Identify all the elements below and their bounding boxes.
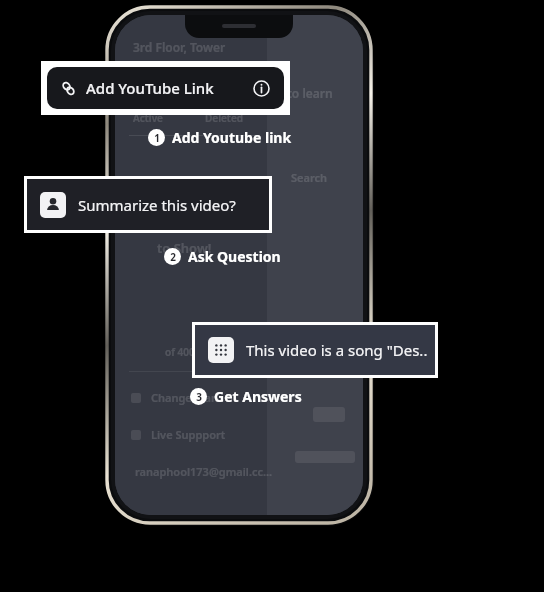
other: Apps [214, 343, 228, 357]
button[interactable]: Account [27, 179, 269, 230]
staticText: of 4000 [165, 345, 201, 359]
button[interactable]: 1 [148, 128, 292, 147]
staticText: 3rd Floor, Tower [133, 39, 226, 55]
staticText: This video is a song "Des.. [246, 340, 428, 360]
button[interactable]: 2 [164, 247, 281, 266]
staticText: Get Answers [214, 387, 302, 406]
staticText: Search [291, 170, 328, 185]
other: Link [61, 81, 76, 96]
staticText: Add Youtube link [172, 128, 292, 147]
staticText: Live Suppport [151, 427, 226, 442]
staticText: Deleted [205, 111, 244, 125]
staticText: Active [133, 111, 163, 125]
button[interactable]: Link [47, 67, 284, 109]
staticText: ranaphool173@gmail.cc... [135, 464, 273, 479]
staticText: Summarize this video? [78, 195, 236, 215]
staticText: Change Plan [151, 390, 219, 405]
staticText: to learn [287, 85, 333, 101]
staticText: 2 [170, 250, 176, 264]
button[interactable]: Apps [195, 325, 435, 375]
staticText: Add YouTube Link [86, 78, 214, 98]
button[interactable]: 3 [190, 387, 302, 406]
staticText: 3 [196, 390, 202, 404]
other: Account [45, 197, 61, 213]
other: Info [253, 80, 270, 97]
staticText: Ask Question [188, 247, 281, 266]
staticText: to Show! [157, 239, 212, 257]
staticText: 1 [154, 131, 160, 145]
